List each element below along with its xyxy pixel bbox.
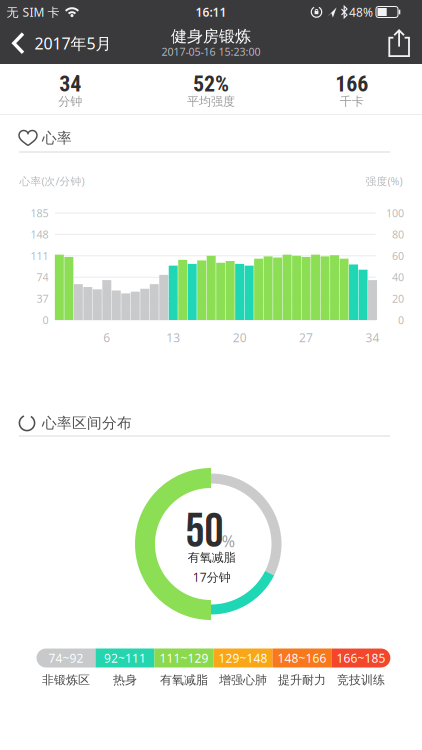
staticText: 92~111 bbox=[104, 650, 146, 666]
staticText: 148~166 bbox=[277, 650, 326, 666]
staticText: 111 bbox=[30, 249, 48, 263]
button[interactable]: 返回 2017年5月 bbox=[0, 21, 130, 65]
staticText: 60 bbox=[392, 249, 404, 263]
staticText: 6 bbox=[103, 329, 110, 345]
staticText: 16:11 bbox=[195, 4, 226, 20]
staticText: 80 bbox=[392, 227, 404, 241]
staticText: % bbox=[222, 530, 235, 552]
staticText: 17分钟 bbox=[193, 569, 231, 585]
staticText: 100 bbox=[386, 206, 404, 220]
staticText: 185 bbox=[30, 206, 48, 220]
staticText: 千卡 bbox=[340, 94, 364, 109]
staticText: 20 bbox=[392, 291, 404, 306]
staticText: 48% bbox=[349, 4, 373, 20]
staticText: 52% bbox=[193, 71, 229, 97]
staticText: 50 bbox=[185, 504, 223, 561]
staticText: 13 bbox=[166, 329, 180, 345]
staticText: 分钟 bbox=[58, 94, 82, 109]
staticText: 74 bbox=[36, 270, 48, 284]
staticText: 129~148 bbox=[218, 650, 267, 666]
staticText: 0 bbox=[42, 313, 48, 327]
staticText: 有氧减脂 bbox=[188, 550, 236, 565]
staticText: 心率 bbox=[42, 129, 72, 147]
staticText: 37 bbox=[36, 291, 48, 306]
staticText: 强度(%) bbox=[365, 174, 402, 188]
button[interactable]: 分享 bbox=[375, 21, 422, 65]
staticText: 0 bbox=[398, 313, 404, 327]
staticText: 27 bbox=[299, 329, 313, 345]
staticText: 166~185 bbox=[336, 650, 385, 666]
staticText: 健身房锻炼 bbox=[171, 27, 251, 46]
staticText: 热身 bbox=[113, 673, 137, 687]
staticText: 有氧减脂 bbox=[160, 673, 208, 687]
staticText: 34 bbox=[365, 329, 379, 345]
staticText: 无 SIM 卡 bbox=[6, 4, 59, 20]
staticText: 166 bbox=[335, 71, 368, 97]
staticText: 111~129 bbox=[159, 650, 208, 666]
staticText: 20 bbox=[233, 329, 247, 345]
staticText: 2017-05-16 15:23:00 bbox=[161, 44, 260, 59]
staticText: 非锻炼区 bbox=[42, 673, 90, 687]
staticText: 提升耐力 bbox=[278, 673, 326, 687]
staticText: 心率(次/分钟) bbox=[19, 174, 84, 188]
staticText: 34 bbox=[59, 71, 81, 97]
staticText: 心率区间分布 bbox=[42, 414, 132, 432]
staticText: 148 bbox=[30, 227, 48, 241]
staticText: 竞技训练 bbox=[337, 673, 385, 687]
staticText: 增强心肺 bbox=[219, 673, 267, 687]
staticText: 74~92 bbox=[48, 650, 83, 666]
staticText: 2017年5月 bbox=[34, 33, 111, 54]
staticText: 平均强度 bbox=[187, 94, 235, 109]
staticText: 40 bbox=[392, 270, 404, 284]
